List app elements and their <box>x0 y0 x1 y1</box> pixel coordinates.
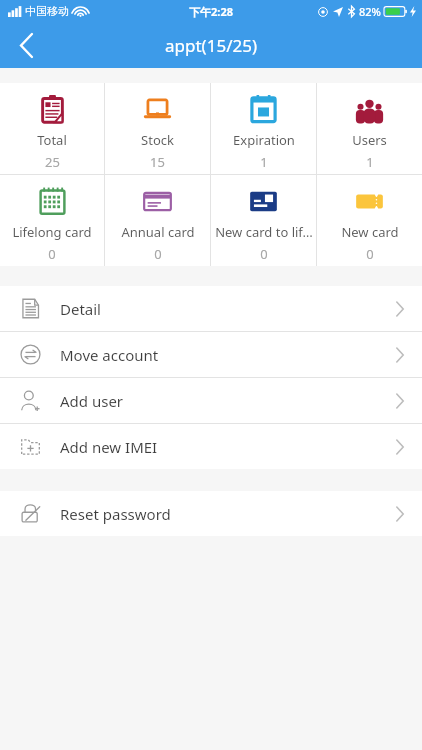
staticText: 0 <box>154 245 162 263</box>
staticText: Move account <box>60 345 159 365</box>
staticText: 15 <box>150 153 165 171</box>
button[interactable]: Lifelong card <box>0 175 104 266</box>
staticText: New card <box>341 223 399 241</box>
button[interactable]: Reset password <box>0 491 422 536</box>
button[interactable]: New card <box>317 175 422 266</box>
button[interactable]: Expiration <box>211 83 316 174</box>
staticText: 中国移动 <box>25 4 69 18</box>
staticText: Stock <box>141 131 174 149</box>
staticText: appt(15/25) <box>165 34 258 57</box>
button[interactable]: Users <box>317 83 422 174</box>
staticText: Detail <box>60 299 101 319</box>
button[interactable]: Back <box>0 22 52 68</box>
button[interactable]: Annual card <box>105 175 210 266</box>
staticText: 1 <box>260 153 268 171</box>
staticText: 下午2:28 <box>189 4 233 19</box>
staticText: Add new IMEI <box>60 437 158 457</box>
staticText: Annual card <box>121 223 195 241</box>
staticText: 82% <box>359 4 381 19</box>
button[interactable]: Detail <box>0 286 422 331</box>
staticText: 1 <box>366 153 374 171</box>
staticText: 0 <box>48 245 56 263</box>
button[interactable]: Add user <box>0 378 422 423</box>
button[interactable]: New card to lif… <box>211 175 316 266</box>
staticText: Reset password <box>60 504 171 524</box>
staticText: Expiration <box>233 131 295 149</box>
staticText: 0 <box>260 245 268 263</box>
button[interactable]: Total <box>0 83 104 174</box>
button[interactable]: Stock <box>105 83 210 174</box>
staticText: 25 <box>45 153 60 171</box>
button[interactable]: Move account <box>0 332 422 377</box>
staticText: New card to lif… <box>215 223 313 241</box>
staticText: Total <box>37 131 67 149</box>
staticText: Add user <box>60 391 124 411</box>
staticText: Users <box>352 131 387 149</box>
staticText: 0 <box>366 245 374 263</box>
button[interactable]: Add new IMEI <box>0 424 422 469</box>
staticText: Lifelong card <box>12 223 92 241</box>
